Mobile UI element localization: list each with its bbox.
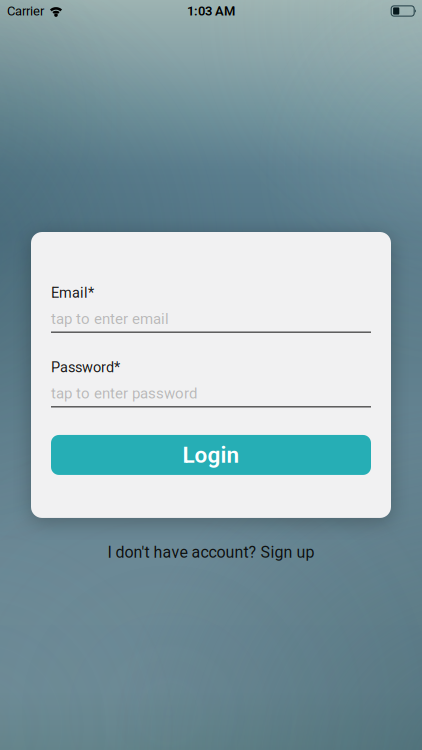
button[interactable]: tap to enter email	[51, 312, 371, 333]
staticText: 1:03 AM	[187, 3, 235, 19]
staticText: tap to enter email	[51, 310, 169, 328]
staticText: Carrier	[7, 3, 44, 19]
staticText: Email*	[51, 284, 94, 301]
button[interactable]: Login	[51, 435, 371, 475]
button[interactable]: tap to enter password	[51, 387, 371, 407]
staticText: tap to enter password	[51, 385, 197, 402]
button[interactable]: I don't have account? Sign up	[107, 543, 314, 562]
staticText: Password*	[51, 359, 120, 376]
staticText: I don't have account? Sign up	[107, 543, 314, 562]
staticText: Login	[182, 442, 239, 468]
